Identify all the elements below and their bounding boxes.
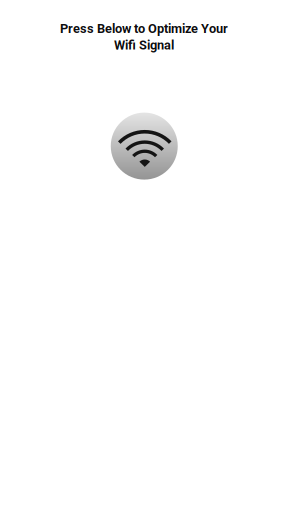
button[interactable]: Optimize Wifi Signal xyxy=(111,113,178,180)
staticText: Wifi Signal xyxy=(114,37,174,52)
staticText: Press Below to Optimize Your xyxy=(60,21,228,36)
